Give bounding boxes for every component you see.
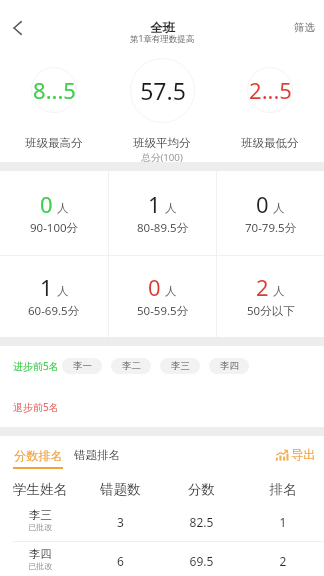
- staticText: 6: [80, 553, 161, 569]
- staticText: 分数: [161, 481, 242, 498]
- staticText: 已批改: [28, 522, 52, 532]
- staticText: 学生姓名: [13, 481, 67, 498]
- staticText: 排名: [242, 481, 324, 498]
- staticText: 3: [80, 514, 161, 530]
- staticText: 李四: [29, 547, 52, 561]
- button[interactable]: 57.5: [108, 50, 216, 162]
- staticText: 0: [40, 189, 53, 219]
- staticText: 70-79.5分: [245, 220, 297, 236]
- staticText: 2: [256, 272, 269, 302]
- staticText: 50分以下: [247, 303, 295, 319]
- button[interactable]: 李三: [0, 500, 324, 541]
- button[interactable]: 2: [217, 256, 324, 337]
- button[interactable]: 筛选: [285, 13, 324, 42]
- staticText: 进步前5名: [13, 359, 59, 373]
- button[interactable]: 2...5: [216, 50, 324, 162]
- staticText: 60-69.5分: [28, 303, 80, 319]
- button[interactable]: 李四: [0, 542, 324, 576]
- staticText: 李一: [73, 360, 92, 372]
- staticText: 69.5: [161, 553, 242, 569]
- staticText: 人: [165, 201, 177, 215]
- staticText: 2: [242, 553, 324, 569]
- staticText: 退步前5名: [13, 400, 59, 414]
- button[interactable]: 0: [217, 171, 324, 255]
- staticText: 分数排名: [14, 448, 63, 463]
- staticText: 80-89.5分: [137, 220, 189, 236]
- staticText: 李三: [29, 508, 52, 522]
- staticText: 人: [273, 201, 285, 215]
- staticText: 8...5: [33, 75, 76, 105]
- button[interactable]: Back: [0, 8, 36, 44]
- staticText: 50-59.5分: [137, 303, 189, 319]
- staticText: 人: [57, 201, 69, 215]
- staticText: 李四: [220, 360, 239, 372]
- staticText: 导出: [291, 447, 316, 462]
- staticText: 班级最低分: [241, 136, 299, 150]
- staticText: 筛选: [294, 21, 315, 34]
- staticText: 班级最高分: [25, 136, 83, 150]
- button[interactable]: 导出: [275, 447, 316, 462]
- staticText: 错题排名: [74, 448, 120, 462]
- staticText: 班级平均分: [133, 136, 191, 150]
- button[interactable]: 8...5: [0, 50, 108, 162]
- staticText: 57.5: [140, 75, 186, 106]
- staticText: 90-100分: [30, 220, 79, 236]
- button[interactable]: 1: [0, 256, 108, 337]
- staticText: 1: [40, 272, 53, 302]
- staticText: 0: [148, 272, 161, 302]
- button[interactable]: 0: [109, 256, 216, 337]
- staticText: 1: [242, 514, 324, 530]
- staticText: 82.5: [161, 514, 242, 530]
- button[interactable]: 0: [0, 171, 108, 255]
- staticText: 人: [273, 284, 285, 298]
- staticText: 李三: [171, 360, 190, 372]
- button[interactable]: 李三: [160, 358, 200, 374]
- button[interactable]: 李二: [111, 358, 151, 374]
- staticText: 1: [148, 189, 161, 219]
- staticText: 李二: [122, 360, 141, 372]
- staticText: 人: [57, 284, 69, 298]
- staticText: 人: [165, 284, 177, 298]
- button[interactable]: 1: [109, 171, 216, 255]
- staticText: 0: [256, 189, 269, 219]
- staticText: 已批改: [28, 561, 52, 571]
- staticText: 全班: [150, 20, 175, 36]
- button[interactable]: 分数排名: [13, 448, 63, 469]
- button[interactable]: 李一: [62, 358, 102, 374]
- button[interactable]: 错题排名: [74, 448, 120, 462]
- button[interactable]: 李四: [209, 358, 249, 374]
- staticText: 2...5: [249, 75, 292, 105]
- staticText: 错题数: [80, 481, 161, 498]
- staticText: 总分(100): [141, 151, 183, 164]
- staticText: 第1章有理数提高: [130, 33, 195, 45]
